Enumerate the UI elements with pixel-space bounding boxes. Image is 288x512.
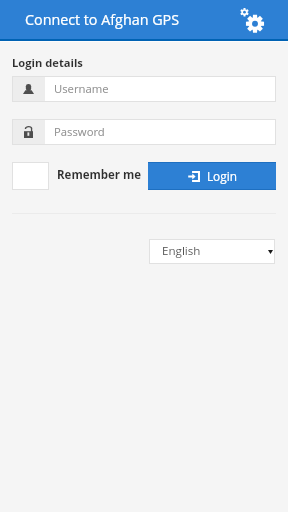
button[interactable]: Login [148,163,276,189]
staticText: Login [207,168,237,184]
staticText: Connect to Afghan GPS [25,10,179,29]
button[interactable]: Username [12,76,276,102]
button[interactable]: Password [12,119,276,145]
staticText: Remember me [57,167,142,183]
button[interactable]: Settings [236,2,268,34]
staticText: English [162,243,201,259]
button[interactable]: English [149,239,275,264]
staticText: Password [54,124,105,139]
staticText: Login details [12,55,83,70]
staticText: Username [54,81,109,96]
button[interactable]: Remember me checkbox [12,162,49,190]
